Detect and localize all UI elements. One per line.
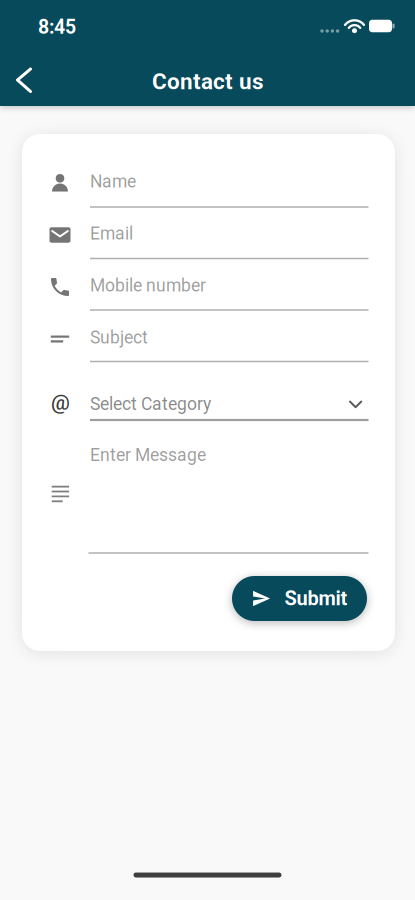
staticText: Name (90, 171, 136, 192)
button[interactable]: Mobile number (40, 265, 381, 317)
staticText: Enter Message (90, 445, 206, 465)
button[interactable]: Subject (40, 316, 381, 368)
staticText: Submit (284, 587, 347, 610)
staticText: Email (90, 223, 133, 244)
button[interactable]: Email (40, 213, 381, 265)
staticText: 8:45 (38, 16, 76, 38)
button[interactable]: Enter Message (40, 435, 381, 560)
staticText: Mobile number (90, 275, 206, 296)
staticText: Subject (90, 327, 148, 348)
button[interactable] (0, 58, 44, 102)
button[interactable]: Name (40, 162, 381, 214)
button[interactable]: @ (40, 366, 381, 424)
staticText: @ (51, 390, 70, 415)
staticText: Contact us (152, 68, 264, 95)
button[interactable]: Submit (232, 576, 367, 621)
staticText: Select Category (90, 394, 211, 414)
